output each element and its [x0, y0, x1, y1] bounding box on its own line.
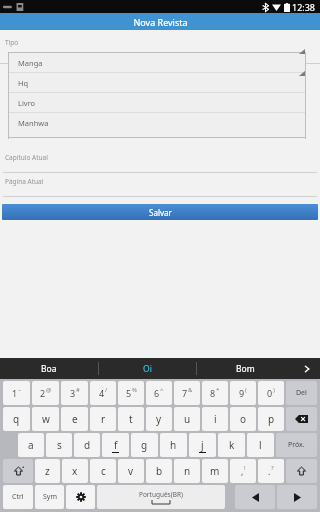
- button[interactable]: Settings: [66, 485, 95, 509]
- staticText: i: [214, 412, 217, 426]
- button[interactable]: Salvar: [2, 204, 318, 220]
- staticText: ): [273, 386, 275, 394]
- button[interactable]: v: [118, 459, 144, 483]
- button[interactable]: r: [90, 407, 116, 431]
- button[interactable]: Português(BR): [97, 485, 225, 509]
- button[interactable]: 3: [61, 381, 88, 405]
- button[interactable]: .: [258, 459, 284, 483]
- staticText: t: [129, 412, 133, 426]
- button[interactable]: Livro: [8, 93, 306, 112]
- button[interactable]: Backspace: [286, 407, 317, 431]
- staticText: q: [13, 412, 20, 426]
- button[interactable]: n: [174, 459, 200, 483]
- button[interactable]: Move right: [277, 485, 317, 509]
- staticText: z: [45, 464, 50, 478]
- button[interactable]: d: [74, 433, 100, 457]
- staticText: Português(BR): [139, 490, 183, 499]
- staticText: Sym: [43, 492, 57, 502]
- button[interactable]: 5: [118, 381, 144, 405]
- button[interactable]: z: [35, 459, 60, 483]
- button[interactable]: 0: [258, 381, 284, 405]
- button[interactable]: Boa: [0, 358, 98, 379]
- button[interactable]: More suggestions: [294, 358, 320, 379]
- button[interactable]: Move left: [235, 485, 275, 509]
- button[interactable]: b: [146, 459, 172, 483]
- button[interactable]: h: [160, 433, 187, 457]
- staticText: m: [210, 464, 220, 478]
- button[interactable]: 2: [32, 381, 59, 405]
- staticText: y: [156, 412, 162, 426]
- staticText: /: [105, 386, 108, 394]
- button[interactable]: x: [62, 459, 88, 483]
- button[interactable]: Ctrl: [3, 485, 33, 509]
- button[interactable]: Próx.: [276, 433, 317, 457]
- button[interactable]: f: [102, 433, 129, 457]
- staticText: Próx.: [288, 440, 305, 450]
- button[interactable]: 8: [202, 381, 228, 405]
- button[interactable]: Manga: [8, 53, 306, 72]
- button[interactable]: 6: [146, 381, 172, 405]
- button[interactable]: Bom: [197, 358, 294, 379]
- button[interactable]: 7: [174, 381, 200, 405]
- button[interactable]: g: [131, 433, 158, 457]
- button[interactable]: o: [230, 407, 256, 431]
- button[interactable]: Oi: [99, 358, 196, 379]
- staticText: #: [76, 386, 80, 394]
- button[interactable]: 1: [3, 381, 30, 405]
- staticText: 2: [40, 387, 46, 399]
- staticText: Boa: [41, 363, 57, 375]
- staticText: Livro: [18, 98, 36, 108]
- staticText: k: [229, 438, 235, 452]
- button[interactable]: Del: [286, 381, 317, 405]
- staticText: !: [244, 464, 246, 472]
- button[interactable]: Hq: [8, 73, 306, 92]
- button[interactable]: Manhwa: [8, 113, 306, 132]
- button[interactable]: a: [18, 433, 44, 457]
- staticText: ,: [241, 465, 244, 477]
- staticText: Oi: [143, 363, 152, 375]
- button[interactable]: l: [247, 433, 274, 457]
- staticText: ~: [18, 386, 22, 394]
- staticText: Bom: [236, 363, 255, 375]
- staticText: 3: [70, 387, 76, 399]
- button[interactable]: e: [61, 407, 88, 431]
- button[interactable]: w: [32, 407, 59, 431]
- button[interactable]: p: [258, 407, 284, 431]
- staticText: j: [201, 438, 204, 452]
- button[interactable]: s: [46, 433, 72, 457]
- button[interactable]: 4: [90, 381, 116, 405]
- button[interactable]: Shift: [286, 459, 317, 483]
- staticText: 5: [126, 387, 132, 399]
- staticText: o: [240, 412, 247, 426]
- button[interactable]: ,: [230, 459, 256, 483]
- button[interactable]: i: [202, 407, 228, 431]
- staticText: Salvar: [149, 207, 172, 218]
- staticText: w: [42, 412, 50, 426]
- staticText: .: [268, 465, 271, 477]
- staticText: g: [141, 438, 148, 452]
- staticText: n: [184, 464, 191, 478]
- button[interactable]: Manga: [0, 50, 320, 63]
- staticText: 8: [210, 387, 216, 399]
- staticText: v: [128, 464, 134, 478]
- staticText: Tipo: [5, 38, 19, 47]
- staticText: l: [259, 438, 262, 452]
- staticText: @: [46, 386, 52, 394]
- button[interactable]: 9: [230, 381, 256, 405]
- button[interactable]: c: [90, 459, 116, 483]
- button[interactable]: m: [202, 459, 228, 483]
- button[interactable]: Shift: [3, 459, 33, 483]
- staticText: ?: [271, 464, 274, 472]
- button[interactable]: y: [146, 407, 172, 431]
- button[interactable]: j: [189, 433, 216, 457]
- button[interactable]: Sym: [35, 485, 64, 509]
- staticText: c: [101, 464, 106, 478]
- staticText: %: [132, 386, 137, 394]
- staticText: a: [28, 438, 34, 452]
- button[interactable]: q: [3, 407, 30, 431]
- staticText: Hq: [18, 78, 29, 88]
- button[interactable]: k: [218, 433, 245, 457]
- button[interactable]: u: [174, 407, 200, 431]
- button[interactable]: t: [118, 407, 144, 431]
- staticText: u: [184, 412, 191, 426]
